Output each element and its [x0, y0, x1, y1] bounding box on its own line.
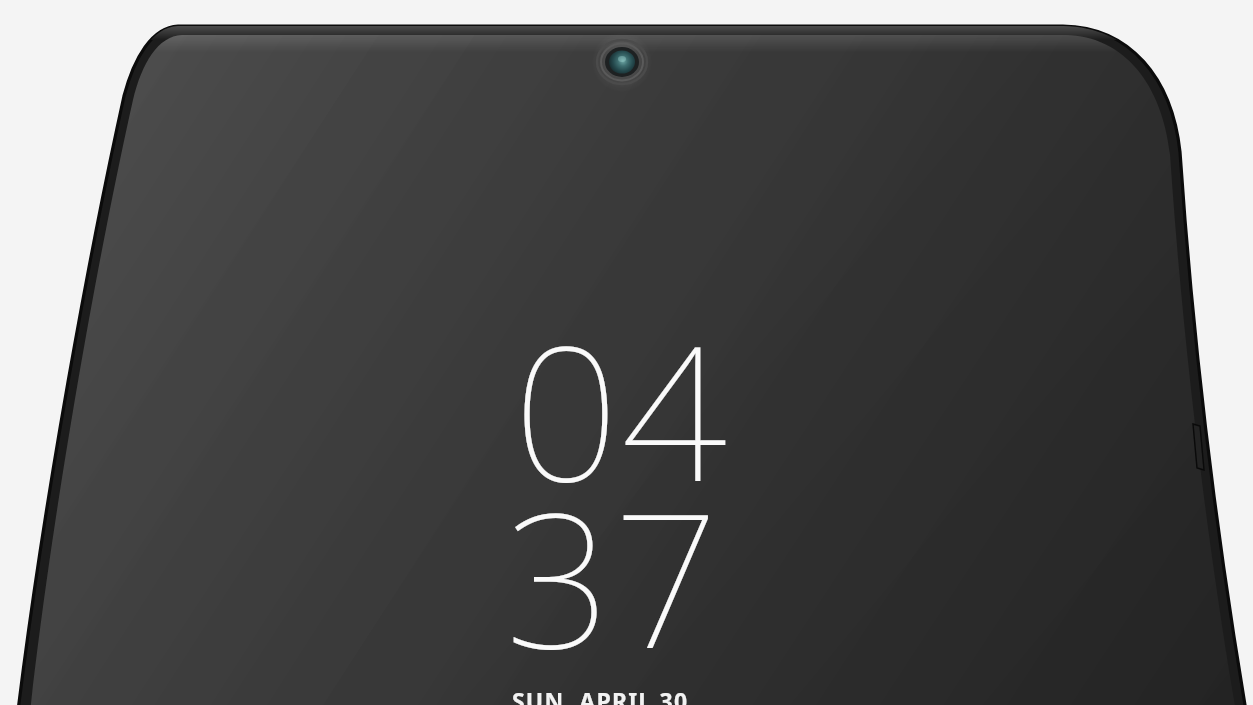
- staticText: 37: [505, 449, 722, 702]
- staticText: 04: [513, 282, 730, 535]
- button[interactable]: Hour 04: [0, 0, 1253, 705]
- staticText: SUN, APRIL 30: [512, 685, 689, 705]
